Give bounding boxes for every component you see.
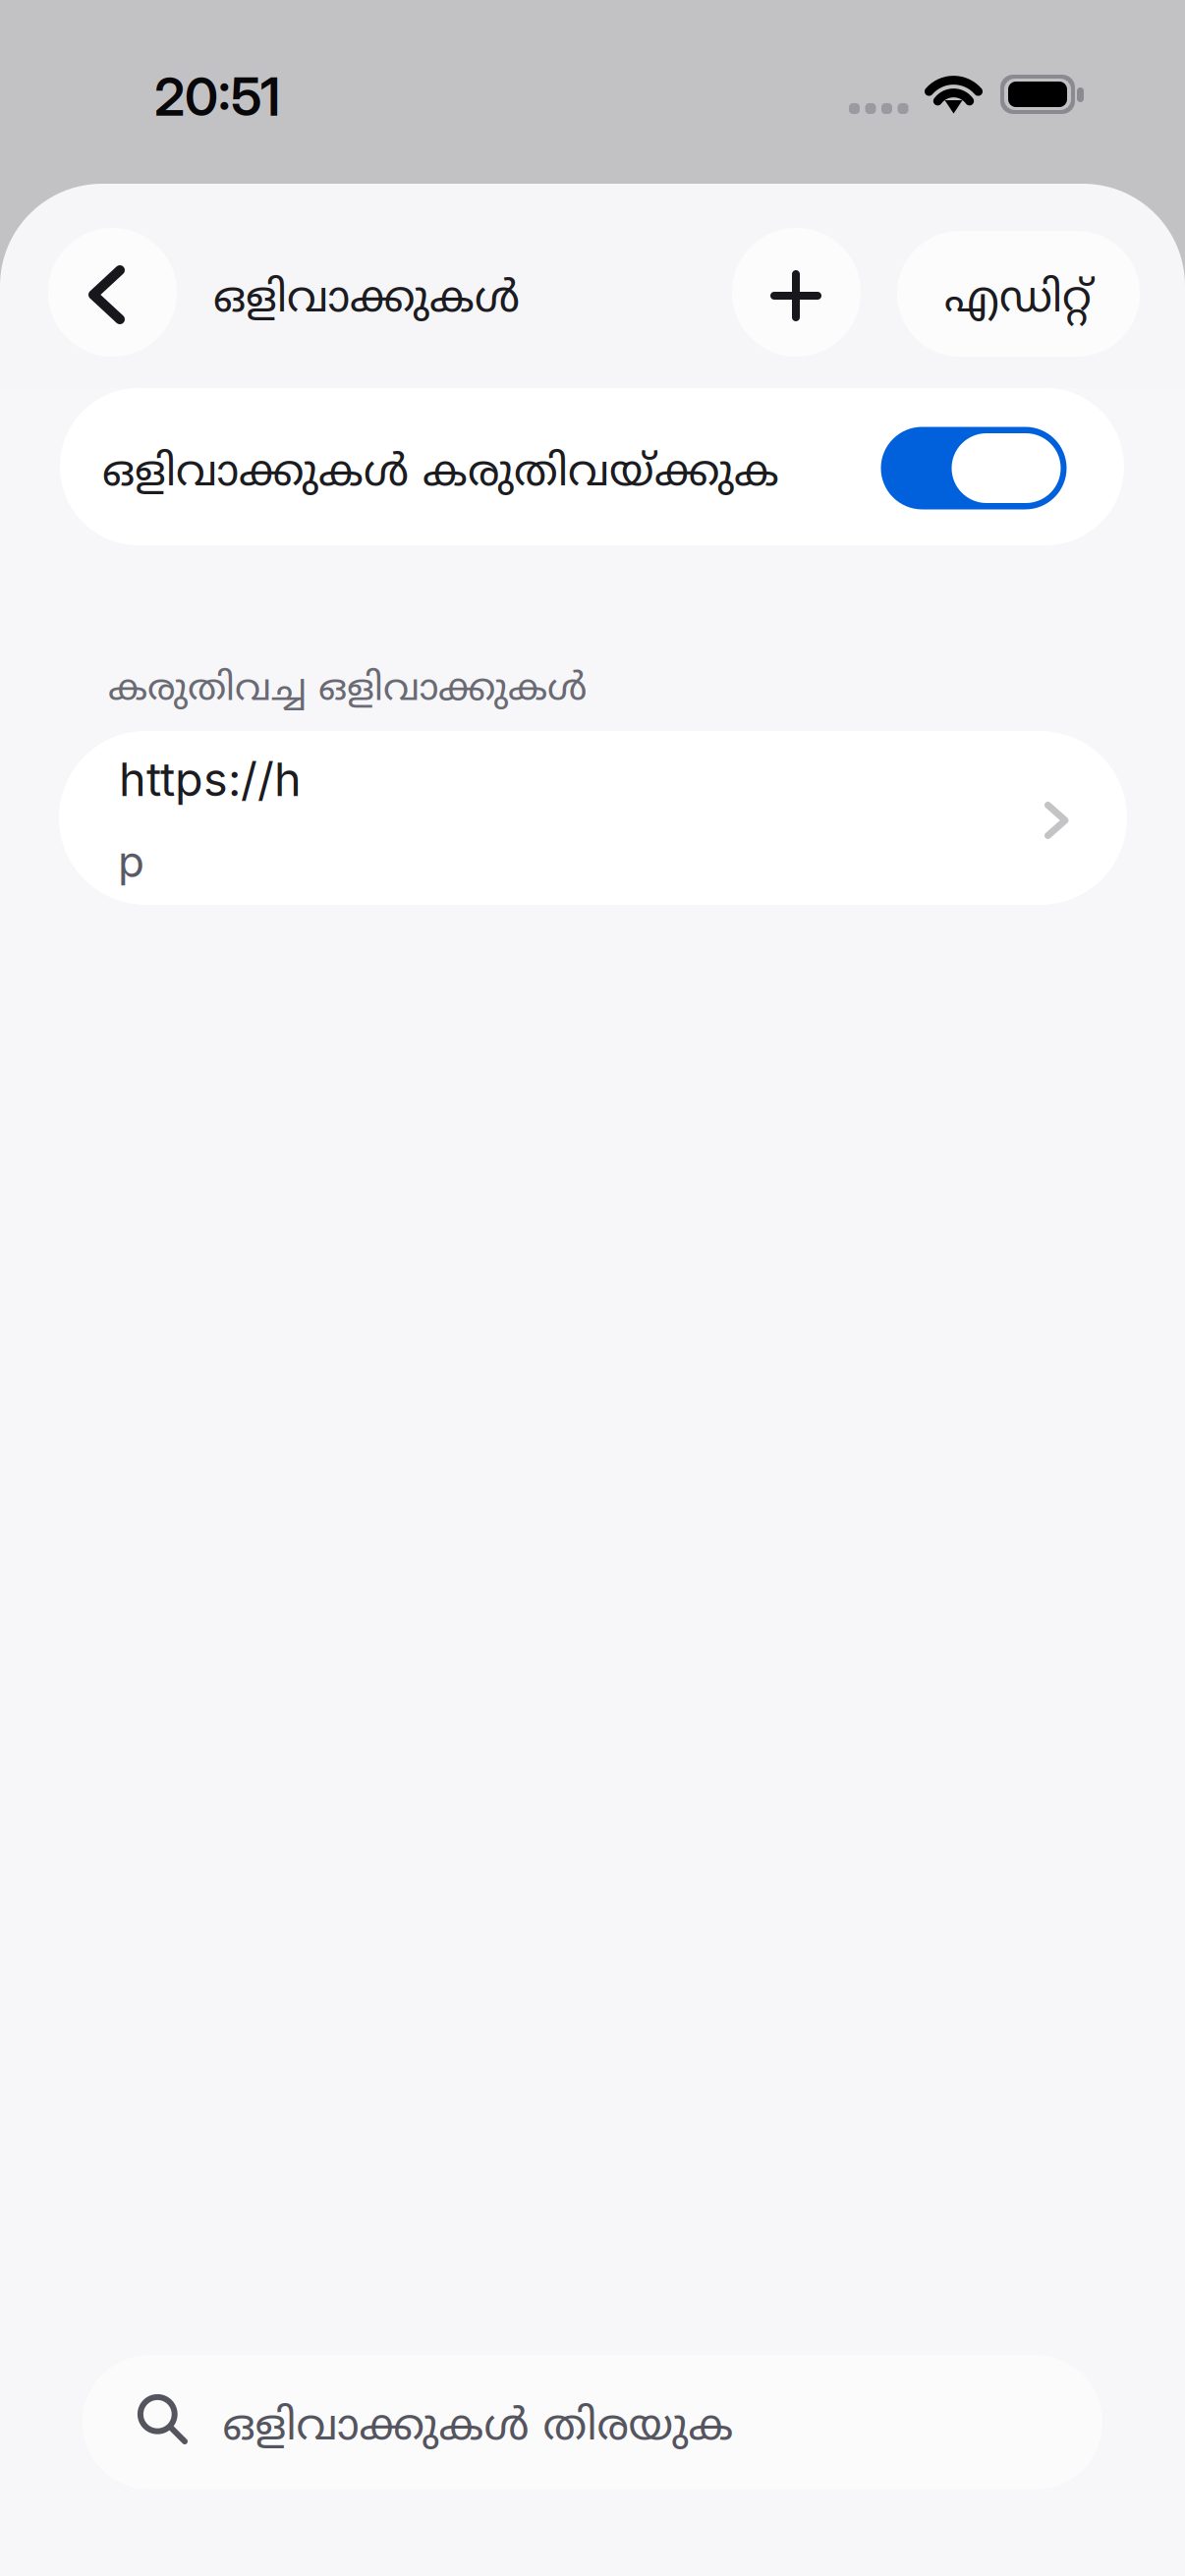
staticText: കരുതിവച്ച ഒളിവാക്കുകൾ — [108, 667, 587, 714]
staticText: എഡിറ്റ് — [944, 274, 1092, 328]
staticText: ഒളിവാക്കുകൾ തിരയുക — [223, 2402, 734, 2456]
button[interactable]: Back — [48, 228, 177, 357]
staticText: p — [118, 835, 144, 887]
button[interactable]: ഒളിവാക്കുകൾ തിരയുക — [83, 2355, 1102, 2490]
button[interactable]: Save Passwords — [881, 427, 1067, 509]
staticText: ഒളിവാക്കുകൾ കരുതിവയ്ക്കുക — [102, 448, 779, 502]
staticText: ഒളിവാക്കുകൾ — [213, 274, 520, 328]
staticText: 20:51 — [154, 65, 280, 128]
button[interactable]: എഡിറ്റ് — [897, 231, 1140, 357]
button[interactable]: Add — [732, 228, 861, 357]
button[interactable]: https://h — [59, 731, 1127, 905]
staticText: https://h — [119, 752, 302, 807]
